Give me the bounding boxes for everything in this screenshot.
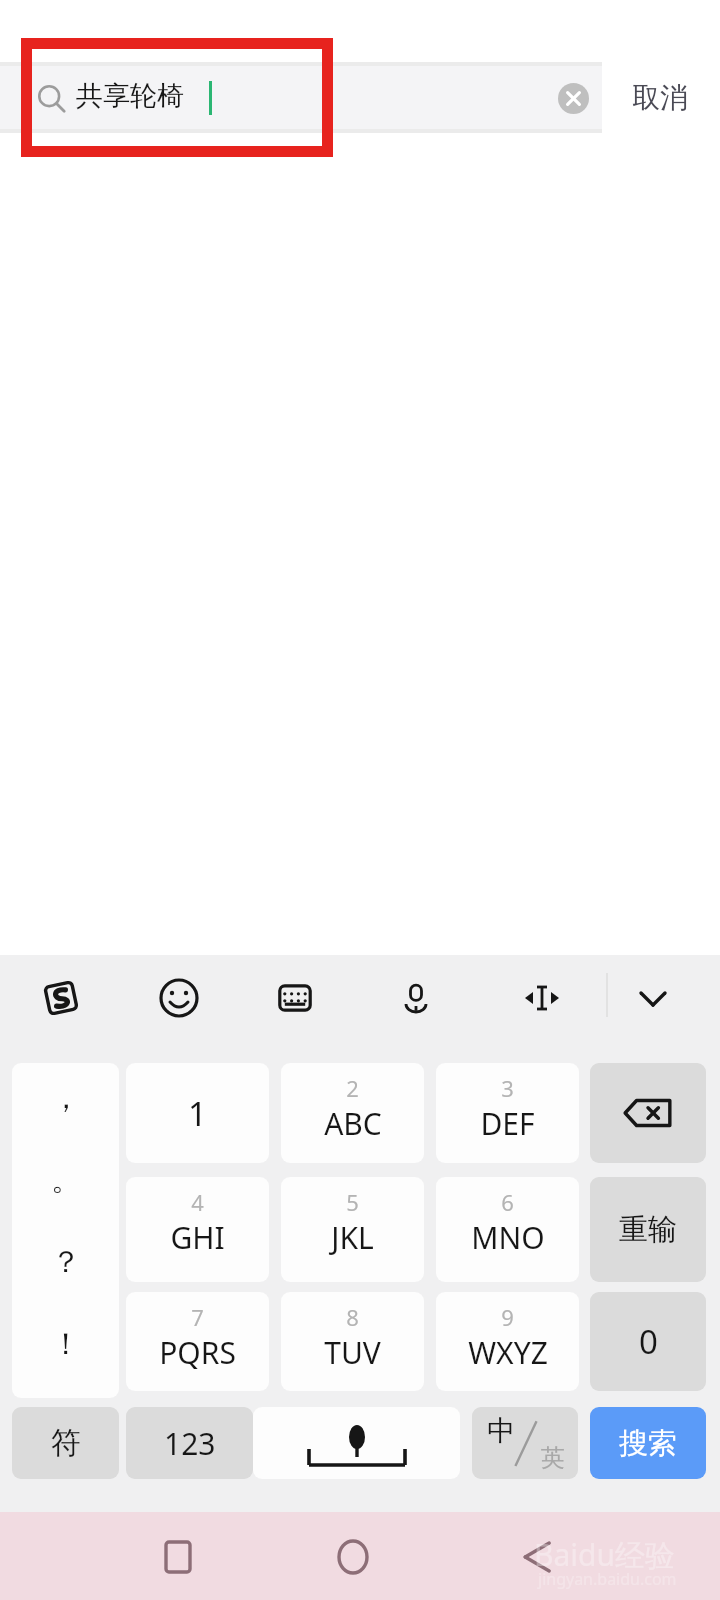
staticText: Baidu经验: [534, 1534, 676, 1575]
staticText: 。: [51, 1161, 81, 1199]
button[interactable]: Recents: [148, 1540, 208, 1574]
staticText: 4: [191, 1187, 204, 1217]
staticText: 2: [346, 1073, 359, 1103]
staticText: 7: [191, 1302, 204, 1332]
button[interactable]: 共享轮椅: [0, 66, 602, 129]
staticText: ？: [51, 1243, 81, 1281]
button[interactable]: Backspace: [590, 1063, 706, 1163]
staticText: 0: [639, 1319, 658, 1364]
staticText: jingyan.baidu.com: [538, 1568, 677, 1590]
staticText: 3: [501, 1073, 514, 1103]
staticText: MNO: [471, 1217, 545, 1258]
staticText: JKL: [331, 1217, 374, 1258]
button[interactable]: Clear text: [556, 81, 590, 115]
staticText: GHI: [170, 1217, 225, 1258]
button[interactable]: Move cursor: [519, 975, 565, 1021]
button[interactable]: 5: [281, 1177, 424, 1282]
button[interactable]: 取消: [610, 66, 710, 129]
button[interactable]: 9: [436, 1292, 579, 1391]
staticText: PQRS: [159, 1332, 236, 1373]
button[interactable]: Space: [253, 1407, 460, 1479]
button[interactable]: 123: [126, 1407, 253, 1479]
button[interactable]: 8: [281, 1292, 424, 1391]
button[interactable]: Hide keyboard: [630, 975, 676, 1021]
button[interactable]: 1: [126, 1063, 269, 1163]
staticText: 符: [51, 1424, 81, 1462]
button[interactable]: 重输: [590, 1177, 706, 1282]
staticText: ，: [51, 1079, 81, 1117]
button[interactable]: 3: [436, 1063, 579, 1163]
button[interactable]: 2: [281, 1063, 424, 1163]
button[interactable]: Back: [508, 1540, 568, 1574]
button[interactable]: 7: [126, 1292, 269, 1391]
button[interactable]: Emoji: [156, 975, 202, 1021]
staticText: DEF: [480, 1103, 535, 1144]
button[interactable]: Punctuation: [12, 1063, 119, 1398]
staticText: 重输: [619, 1211, 677, 1248]
button[interactable]: 6: [436, 1177, 579, 1282]
button[interactable]: 搜索: [590, 1407, 706, 1479]
button[interactable]: Voice input: [393, 975, 439, 1021]
staticText: ABC: [324, 1103, 382, 1144]
button[interactable]: Keyboard layout: [272, 975, 318, 1021]
button[interactable]: 符: [12, 1407, 119, 1479]
staticText: 英: [541, 1443, 565, 1473]
button[interactable]: Home: [323, 1540, 383, 1574]
button[interactable]: 0: [590, 1292, 706, 1391]
button[interactable]: Chinese English toggle: [472, 1407, 578, 1479]
staticText: 6: [501, 1187, 514, 1217]
staticText: 共享轮椅: [76, 79, 184, 113]
button[interactable]: 4: [126, 1177, 269, 1282]
staticText: 9: [501, 1302, 514, 1332]
staticText: 取消: [632, 80, 688, 115]
staticText: 8: [346, 1302, 359, 1332]
staticText: 搜索: [619, 1425, 677, 1462]
staticText: TUV: [324, 1332, 381, 1373]
staticText: WXYZ: [468, 1332, 548, 1373]
staticText: 中: [487, 1413, 515, 1448]
staticText: 5: [346, 1187, 359, 1217]
staticText: 1: [188, 1091, 207, 1136]
staticText: 123: [164, 1423, 216, 1464]
staticText: ！: [51, 1325, 81, 1363]
button[interactable]: Sogou input: [38, 975, 84, 1021]
